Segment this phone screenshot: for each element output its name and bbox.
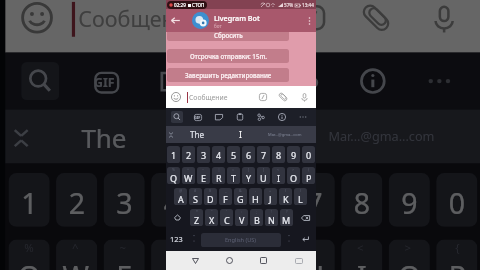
button[interactable]: [ [242,167,255,184]
button[interactable]: 9 [389,173,430,227]
button[interactable]: % [8,239,50,270]
button[interactable]: More [292,108,313,126]
button[interactable]: Commands [281,0,344,53]
button[interactable]: 5 [227,146,240,163]
button[interactable]: : [235,209,248,226]
button[interactable]: Expand suggestions [5,110,37,163]
button[interactable]: ? [280,209,293,226]
button[interactable]: More [404,53,471,110]
button[interactable]: | [151,239,192,270]
button[interactable]: { [302,167,315,184]
button[interactable]: Enter [296,230,315,247]
button[interactable]: Search [5,53,72,110]
button[interactable]: 9 [287,146,300,163]
button[interactable]: + [264,188,277,205]
button[interactable]: ( [279,188,292,205]
button[interactable]: The [37,110,173,163]
button[interactable]: 8 [272,146,285,163]
button[interactable]: Mar...@gma...com [309,110,452,163]
button[interactable]: 4 [151,173,192,227]
button[interactable]: Emoji [166,86,185,108]
button[interactable]: * [190,209,203,226]
button[interactable]: ; [250,209,263,226]
button[interactable]: English (US) [201,233,281,247]
button[interactable]: ) [294,188,307,205]
button[interactable]: = [227,167,240,184]
button[interactable]: 1 [8,173,50,227]
button[interactable]: " [205,209,218,226]
button[interactable]: GIF [72,53,138,110]
button[interactable]: GIF [187,108,208,126]
button[interactable]: Hide keyboard [281,251,316,270]
button[interactable]: Recents [246,251,281,270]
button[interactable]: _ [219,188,232,205]
button[interactable]: 3 [104,173,145,227]
button[interactable]: 3 [197,146,210,163]
button[interactable]: $ [204,188,217,205]
button[interactable]: Attach [273,86,293,108]
button[interactable]: More options [303,9,316,32]
button[interactable]: Attach [344,0,408,53]
button[interactable]: ~ [197,167,210,184]
button[interactable] [283,230,294,247]
button[interactable]: ^ [182,167,195,184]
button[interactable]: 6 [246,173,287,227]
button[interactable]: Emoji [5,0,66,53]
button[interactable]: ] [257,167,270,184]
button[interactable]: 2 [182,146,195,163]
button[interactable]: The [176,126,219,143]
button[interactable]: Keyboard settings [338,53,404,110]
button[interactable]: I [173,110,309,163]
button[interactable]: > [287,167,300,184]
button[interactable]: 6 [242,146,255,163]
button[interactable]: % [167,167,180,184]
button[interactable]: 5 [199,173,240,227]
button[interactable]: < [341,239,382,270]
button[interactable]: Back [178,251,212,270]
button[interactable]: > [389,239,430,270]
button[interactable]: 4 [212,146,225,163]
button[interactable]: Keyboard settings [271,108,292,126]
button[interactable]: Theme [250,108,271,126]
button[interactable]: ' [220,209,233,226]
button[interactable]: 0 [436,173,477,227]
button[interactable]: Shift [167,209,188,226]
button[interactable]: Stickers [208,108,229,126]
button[interactable]: Expand suggestions [166,126,176,143]
button[interactable]: Home [212,251,246,270]
button[interactable]: ] [294,239,335,270]
button[interactable]: { [436,239,477,270]
button[interactable]: Завершить редактирование [167,68,289,82]
button[interactable]: ! [265,209,278,226]
button[interactable]: Stickers [138,53,205,110]
button[interactable]: # [189,188,202,205]
button[interactable]: Voice message [293,86,316,108]
button[interactable]: Commands [253,86,273,108]
button[interactable]: [ [246,239,287,270]
button[interactable]: = [199,239,240,270]
button[interactable]: Voice message [408,0,480,53]
button[interactable]: Theme [271,53,338,110]
button[interactable]: | [212,167,225,184]
button[interactable]: Search [166,108,187,126]
button[interactable]: Back [166,9,185,32]
button[interactable]: & [234,188,247,205]
button[interactable]: 1 [167,146,180,163]
button[interactable]: Clipboard [205,53,271,110]
button[interactable]: 2 [56,173,97,227]
button[interactable]: < [272,167,285,184]
button[interactable]: ^ [56,239,97,270]
button[interactable]: ~ [104,239,145,270]
button[interactable]: 123 [167,230,186,247]
button[interactable]: Сбросить [167,32,289,41]
button[interactable]: Отсрочка отправки: 15m. [167,49,289,63]
button[interactable]: - [249,188,262,205]
button[interactable] [188,230,199,247]
button[interactable]: 0 [302,146,315,163]
button[interactable]: 8 [341,173,382,227]
button[interactable]: I [219,126,262,143]
button[interactable]: Backspace [295,209,315,226]
button[interactable]: 7 [257,146,270,163]
button[interactable]: 7 [294,173,335,227]
button[interactable]: Clipboard [229,108,250,126]
